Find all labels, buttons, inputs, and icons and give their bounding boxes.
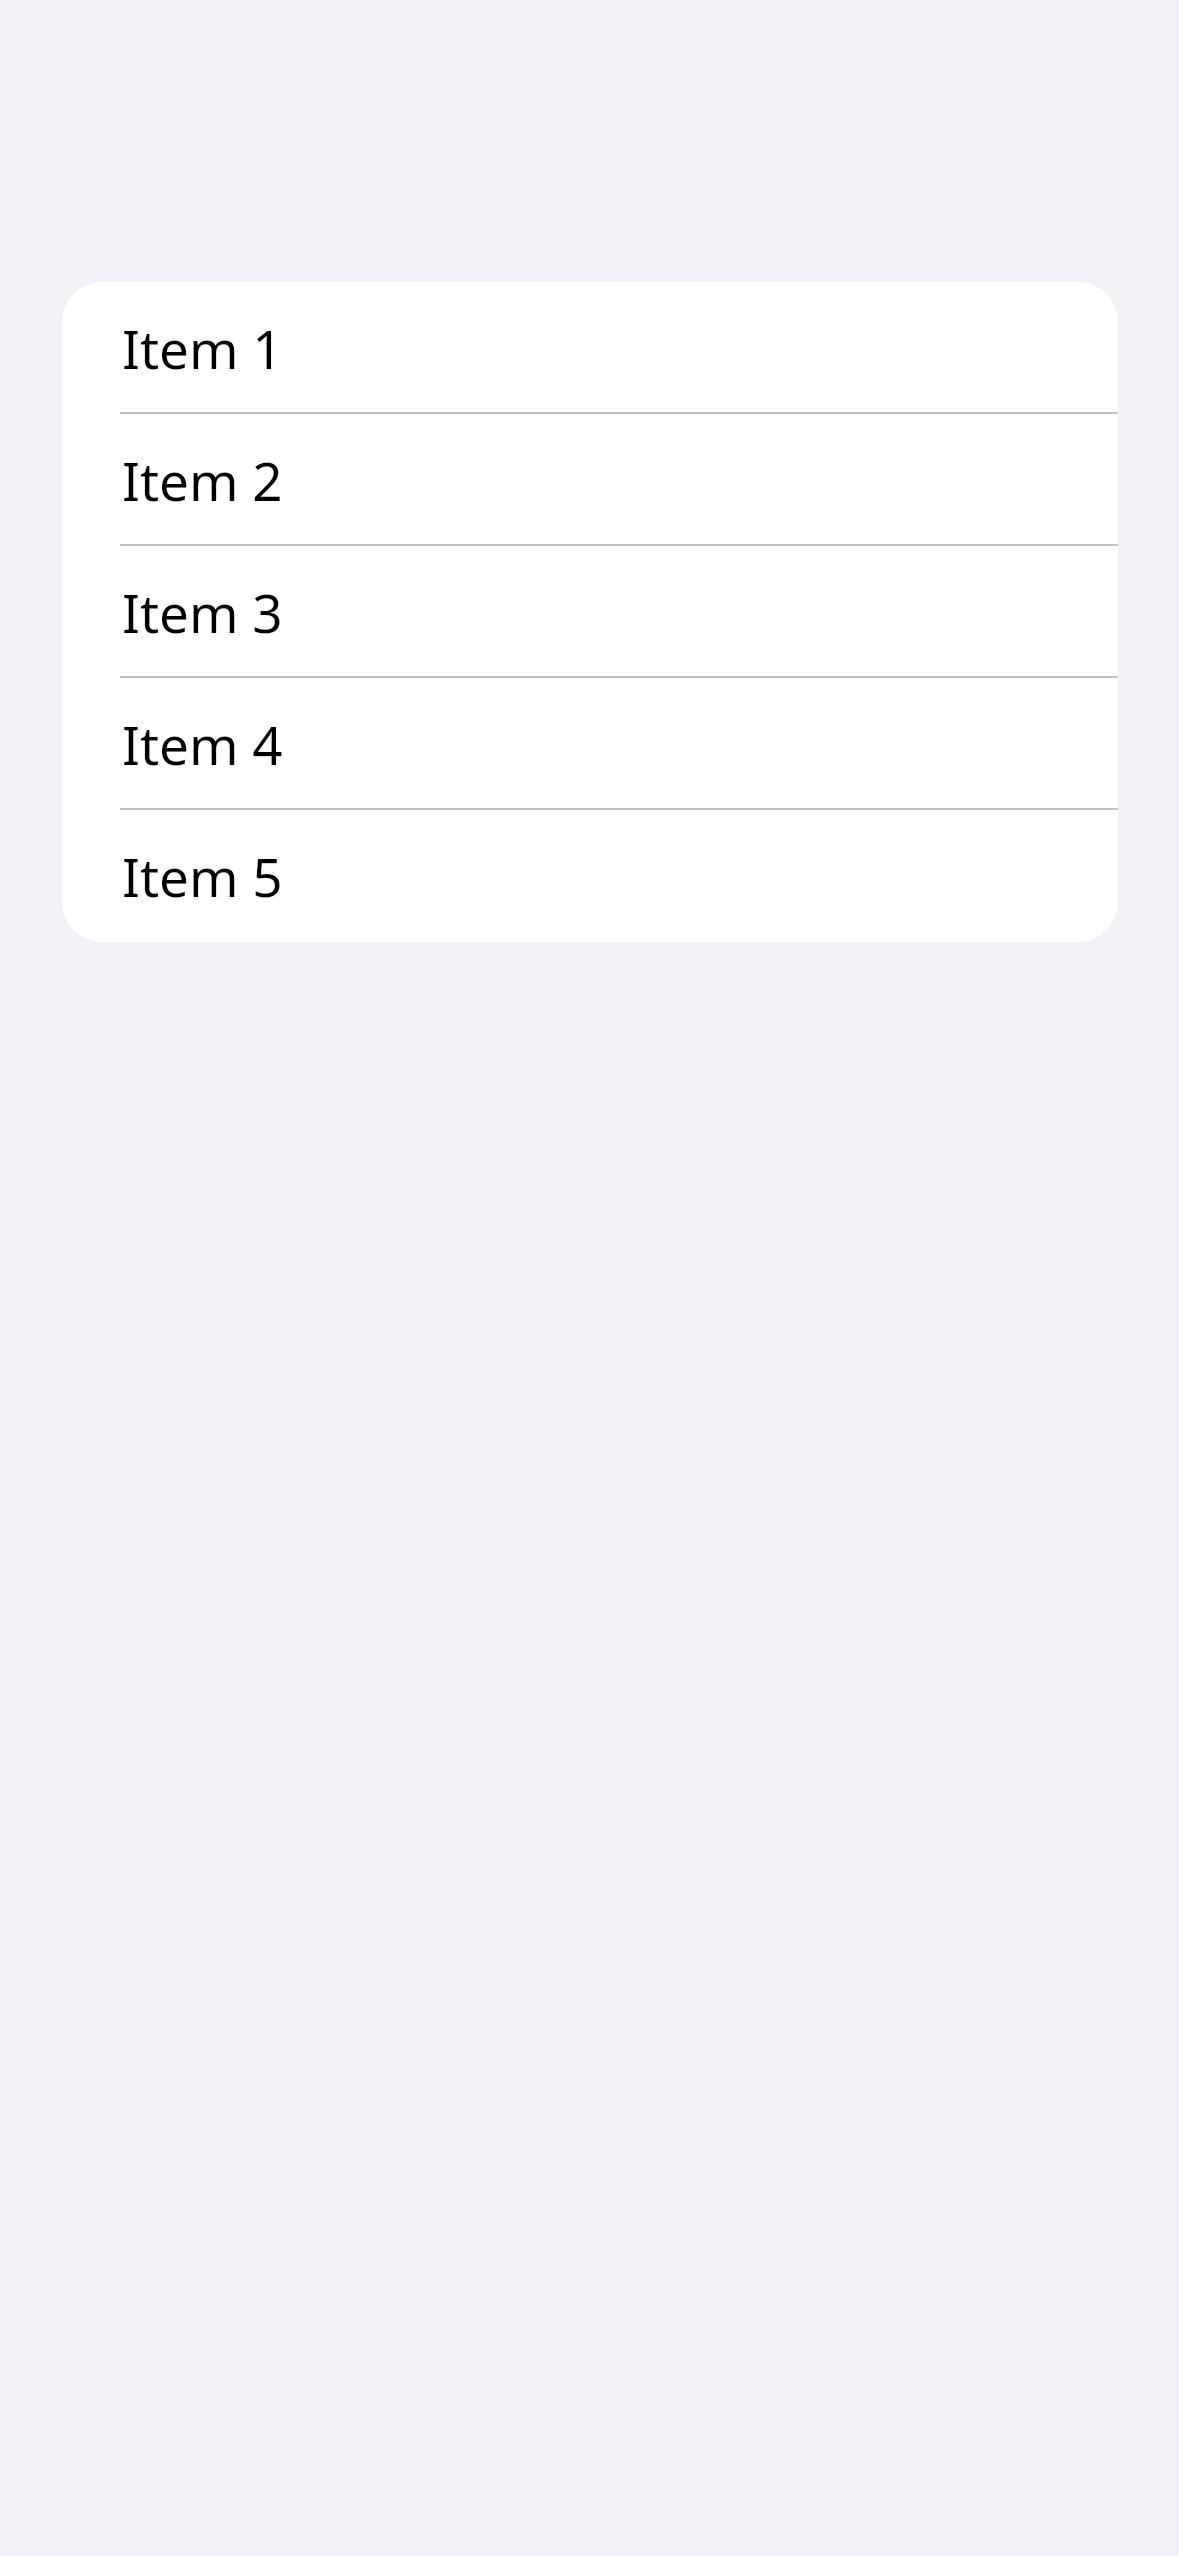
button[interactable]: Item 5 xyxy=(62,810,1118,942)
button[interactable]: Item 2 xyxy=(62,414,1118,546)
staticText: Item 1 xyxy=(122,312,283,384)
staticText: Item 2 xyxy=(122,444,283,516)
staticText: Item 3 xyxy=(122,576,283,648)
button[interactable]: Item 1 xyxy=(62,282,1118,414)
button[interactable]: Item 4 xyxy=(62,678,1118,810)
staticText: Item 4 xyxy=(122,708,283,780)
staticText: Item 5 xyxy=(122,840,283,912)
button[interactable]: Item 3 xyxy=(62,546,1118,678)
